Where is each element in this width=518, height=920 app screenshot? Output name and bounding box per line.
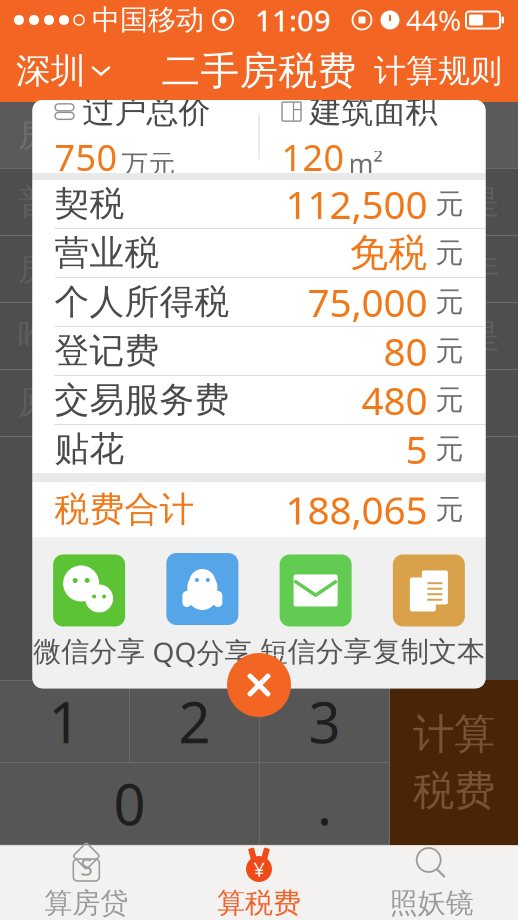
button[interactable]: 复制文本 <box>372 554 485 669</box>
staticText: 112,500 <box>285 178 427 230</box>
button[interactable]: S <box>0 846 173 920</box>
button[interactable]: QQ分享 <box>146 553 259 670</box>
staticText: 原值价格 <box>18 382 150 423</box>
staticText: 算税费 <box>217 886 301 920</box>
staticText: 贴花 <box>54 428 124 470</box>
staticText: 是 <box>468 316 500 356</box>
staticText: 二手房税费 <box>161 47 356 95</box>
button[interactable]: 关闭 <box>227 653 291 717</box>
staticText: 营业税 <box>54 232 159 274</box>
staticText: 元 <box>427 285 463 319</box>
staticText: 过户总价 <box>82 92 210 131</box>
staticText: 算房贷 <box>44 886 128 920</box>
staticText: QQ分享 <box>152 633 252 670</box>
staticText: 44% <box>406 1 461 39</box>
staticText: 普通住宅 <box>18 181 150 222</box>
staticText: 交易服务费 <box>54 379 229 421</box>
staticText: S <box>80 852 92 882</box>
button[interactable]: 深圳 <box>0 40 128 102</box>
staticText: m² <box>348 146 382 181</box>
staticText: 元 <box>427 432 463 466</box>
staticText: 11:09 <box>255 0 331 39</box>
staticText: 0 <box>113 766 145 841</box>
staticText: 万元 <box>121 148 175 181</box>
staticText: 188,065 <box>285 484 427 535</box>
staticText: 房屋年限 <box>18 248 150 289</box>
staticText: 短信分享 <box>260 634 372 669</box>
staticText: 120 <box>281 133 344 181</box>
staticText: 80 <box>383 325 427 377</box>
staticText: 免税 <box>349 229 427 277</box>
button[interactable]: ¥ <box>173 846 345 920</box>
staticText: 个人所得税 <box>54 281 229 323</box>
staticText: 税费 <box>413 765 495 816</box>
staticText: 480 <box>361 374 427 426</box>
button[interactable]: 微信分享 <box>32 554 146 669</box>
staticText: 计算规则 <box>374 51 502 91</box>
staticText: 750 <box>54 133 117 181</box>
staticText: 计算 <box>413 709 495 759</box>
staticText: 唯一住房 <box>18 315 150 356</box>
staticText: 建筑面积 <box>309 92 437 131</box>
staticText: . <box>317 766 332 841</box>
staticText: 契税 <box>54 183 124 225</box>
button[interactable]: 照妖镜 <box>345 846 518 920</box>
staticText: 元 <box>427 334 463 368</box>
staticText: 5 <box>405 423 427 475</box>
staticText: 照妖镜 <box>390 886 474 920</box>
staticText: 微信分享 <box>33 634 145 669</box>
staticText: ¥ <box>253 856 264 882</box>
button[interactable]: 短信分享 <box>259 554 372 669</box>
staticText: 满五年 <box>404 249 500 289</box>
staticText: 是 <box>468 182 500 222</box>
staticText: 75,000 <box>307 276 427 328</box>
staticText: 税费合计 <box>54 488 194 531</box>
staticText: 中国移动 <box>84 3 204 37</box>
staticText: 3 <box>308 684 340 759</box>
staticText: 1 <box>48 684 80 759</box>
staticText: 复制文本 <box>373 634 485 669</box>
staticText: 2 <box>178 684 210 759</box>
button[interactable]: 计算规则 <box>358 40 518 102</box>
staticText: 元 <box>427 187 463 221</box>
staticText: 登记费 <box>54 330 159 372</box>
staticText: 元 <box>427 492 463 527</box>
staticText: 元 <box>427 236 463 270</box>
staticText: 房屋总价 <box>18 114 150 155</box>
staticText: 元 <box>427 383 463 417</box>
staticText: 深圳 <box>16 50 86 92</box>
